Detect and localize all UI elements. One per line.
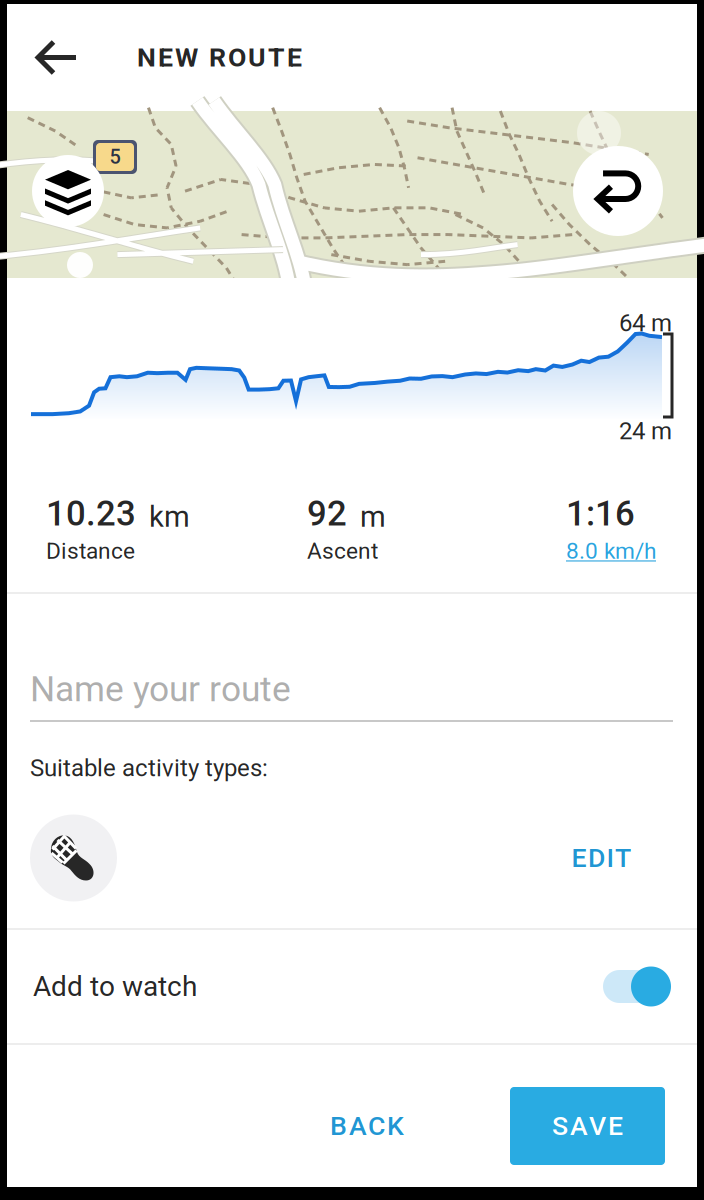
button[interactable]: Back bbox=[7, 4, 137, 111]
staticText: Distance bbox=[46, 538, 135, 564]
staticText: 64 m bbox=[619, 309, 672, 337]
button[interactable]: EDIT bbox=[561, 814, 673, 902]
staticText: Add to watch bbox=[33, 970, 197, 1003]
staticText: NEW ROUTE bbox=[137, 42, 302, 73]
staticText: 1:16 bbox=[566, 493, 635, 534]
staticText: SAVE bbox=[552, 1110, 623, 1142]
staticText: Suitable activity types: bbox=[30, 754, 268, 782]
staticText: EDIT bbox=[571, 842, 631, 874]
staticText: km bbox=[149, 500, 190, 534]
staticText: BACK bbox=[330, 1110, 404, 1142]
button[interactable]: BACK bbox=[300, 1087, 434, 1165]
staticText: 5 bbox=[109, 145, 120, 169]
staticText: Name your route bbox=[30, 669, 291, 710]
staticText: 24 m bbox=[619, 417, 672, 445]
button[interactable]: Map layers bbox=[32, 155, 104, 227]
staticText: 10.23 bbox=[46, 493, 136, 534]
staticText: 92 bbox=[307, 493, 347, 534]
button[interactable]: Add to watch bbox=[7, 930, 697, 1043]
button[interactable]: SAVE bbox=[510, 1087, 665, 1165]
button[interactable]: Reverse route bbox=[573, 146, 663, 236]
staticText: m bbox=[360, 500, 386, 534]
staticText: 8.0 km/h bbox=[566, 538, 656, 564]
button[interactable]: Name your route bbox=[30, 594, 673, 722]
button[interactable]: 8.0 km/h bbox=[566, 534, 656, 568]
staticText: Ascent bbox=[307, 538, 378, 564]
